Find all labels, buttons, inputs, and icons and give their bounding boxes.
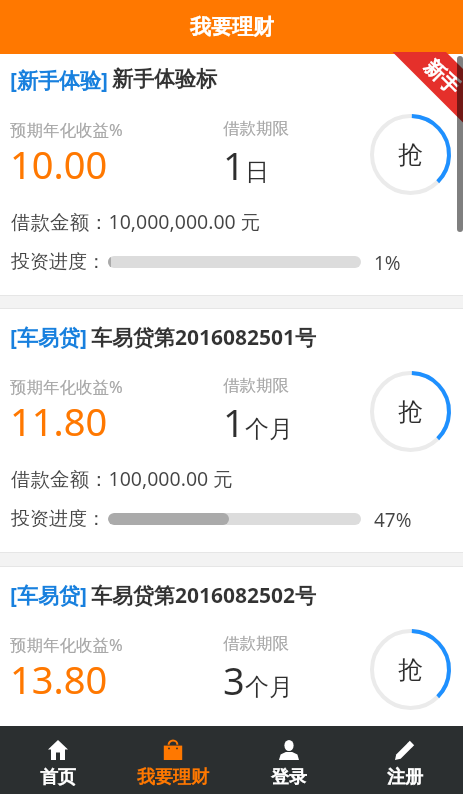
button[interactable]: 抢购 <box>370 629 451 710</box>
staticText: 我要理财 <box>137 766 209 789</box>
staticText: 投资进度： <box>11 507 106 531</box>
staticText: 个月 <box>245 672 293 702</box>
staticText: 我要理财 <box>190 14 274 40</box>
staticText: [车易贷] <box>10 323 87 352</box>
button[interactable]: [车易贷] <box>0 309 463 552</box>
staticText: 10.00 <box>10 138 108 190</box>
staticText: 投资进度： <box>11 250 106 274</box>
staticText: 预期年化收益% <box>10 118 123 141</box>
staticText: 首页 <box>40 766 76 789</box>
staticText: 注册 <box>387 766 423 789</box>
staticText: 抢 <box>398 396 423 427</box>
staticText: 预期年化收益% <box>10 375 123 398</box>
staticText: 1% <box>374 250 401 276</box>
button[interactable]: 注册 <box>347 726 463 794</box>
staticText: 新手 <box>419 54 463 100</box>
button[interactable]: 抢购 <box>370 371 451 452</box>
staticText: 登录 <box>271 766 307 789</box>
button[interactable]: 登录 <box>231 726 347 794</box>
button[interactable]: [新手体验] <box>0 52 463 295</box>
staticText: 预期年化收益% <box>10 633 123 656</box>
staticText: 3 <box>223 654 245 706</box>
staticText: 借款期限 <box>223 375 289 396</box>
staticText: 日 <box>245 157 269 187</box>
button[interactable]: 首页 <box>0 726 115 794</box>
staticText: 借款期限 <box>223 633 289 654</box>
staticText: 借款期限 <box>223 118 289 139</box>
staticText: 11.80 <box>10 395 108 447</box>
staticText: 车易贷第2016082501号 <box>91 323 317 352</box>
staticText: [新手体验] <box>10 66 108 95</box>
staticText: 1 <box>223 139 245 191</box>
button[interactable]: [车易贷] <box>0 567 463 724</box>
button[interactable]: 我要理财 <box>0 0 463 54</box>
staticText: 投资进度： <box>11 765 106 789</box>
staticText: 个月 <box>245 414 293 444</box>
staticText: 借款金额：100,000.00 元 <box>11 465 233 492</box>
staticText: 借款金额：10,000,000.00 元 <box>11 208 261 235</box>
staticText: 车易贷第2016082502号 <box>91 581 317 610</box>
staticText: 1 <box>223 396 245 448</box>
staticText: 47% <box>374 507 412 533</box>
button[interactable]: 抢购 <box>370 114 451 195</box>
staticText: 13.80 <box>10 653 108 705</box>
staticText: [车易贷] <box>10 581 87 610</box>
button[interactable]: 我要理财 <box>115 726 231 794</box>
staticText: 新手体验标 <box>112 66 217 92</box>
staticText: 抢 <box>398 139 423 170</box>
staticText: 借款金额：100,000.00 元 <box>11 723 233 750</box>
staticText: 抢 <box>398 654 423 685</box>
